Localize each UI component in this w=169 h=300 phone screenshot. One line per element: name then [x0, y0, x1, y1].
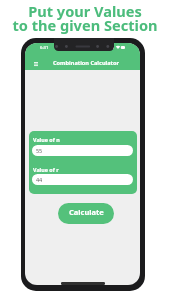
button[interactable]: 44: [32, 174, 133, 185]
button[interactable]: Calculate: [58, 203, 114, 224]
staticText: Calculate: [69, 207, 104, 217]
staticText: Value of r: [33, 166, 59, 173]
button[interactable]: 55: [32, 145, 133, 156]
staticText: Put your Values to the given Section: [12, 1, 158, 35]
staticText: 44: [36, 176, 43, 183]
staticText: Combination Calculator: [53, 59, 119, 67]
staticText: 6:31: [40, 45, 49, 51]
staticText: Value of n: [33, 136, 60, 143]
staticText: 55: [36, 147, 43, 154]
button[interactable]: Open navigation menu: [32, 60, 41, 68]
